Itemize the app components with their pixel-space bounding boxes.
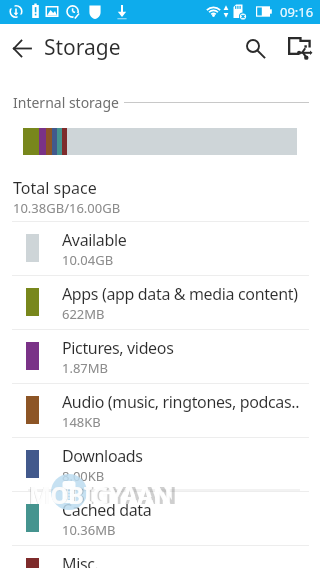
button[interactable]: Pictures, videos bbox=[0, 329, 320, 383]
staticText: Storage bbox=[44, 33, 121, 62]
button[interactable]: Audio (music, ringtones, podcas.. bbox=[0, 383, 320, 437]
staticText: MOBIGYAAN bbox=[28, 478, 177, 511]
staticText: Pictures, videos bbox=[62, 337, 174, 359]
staticText: 10.38GB/16.00GB bbox=[13, 199, 121, 217]
button[interactable]: Back bbox=[0, 24, 46, 72]
staticText: 8.00KB bbox=[62, 467, 105, 485]
staticText: MOBIGYAAN bbox=[29, 479, 172, 510]
button[interactable]: Misc. bbox=[0, 545, 320, 568]
button[interactable]: Available bbox=[0, 221, 320, 275]
staticText: 10.36MB bbox=[62, 521, 116, 539]
button[interactable]: Apps (app data & media content) bbox=[0, 275, 320, 329]
staticText: Apps (app data & media content) bbox=[62, 283, 298, 305]
staticText: Audio (music, ringtones, podcas.. bbox=[62, 391, 300, 413]
staticText: Misc. bbox=[62, 553, 99, 568]
button[interactable]: Search bbox=[231, 24, 279, 72]
button[interactable]: USB storage bbox=[274, 24, 320, 72]
staticText: Cached data bbox=[62, 499, 152, 521]
staticText: 148KB bbox=[62, 413, 101, 431]
staticText: Downloads bbox=[62, 445, 143, 467]
staticText: Available bbox=[62, 229, 127, 251]
staticText: Total space bbox=[13, 177, 97, 199]
button[interactable]: Downloads bbox=[0, 437, 320, 491]
staticText: 10.04GB bbox=[62, 251, 114, 269]
staticText: Internal storage bbox=[13, 93, 119, 112]
staticText: 1.87MB bbox=[62, 359, 109, 377]
button[interactable]: Cached data bbox=[0, 491, 320, 545]
staticText: 622MB bbox=[62, 305, 105, 323]
staticText: 09:16 bbox=[280, 3, 314, 21]
